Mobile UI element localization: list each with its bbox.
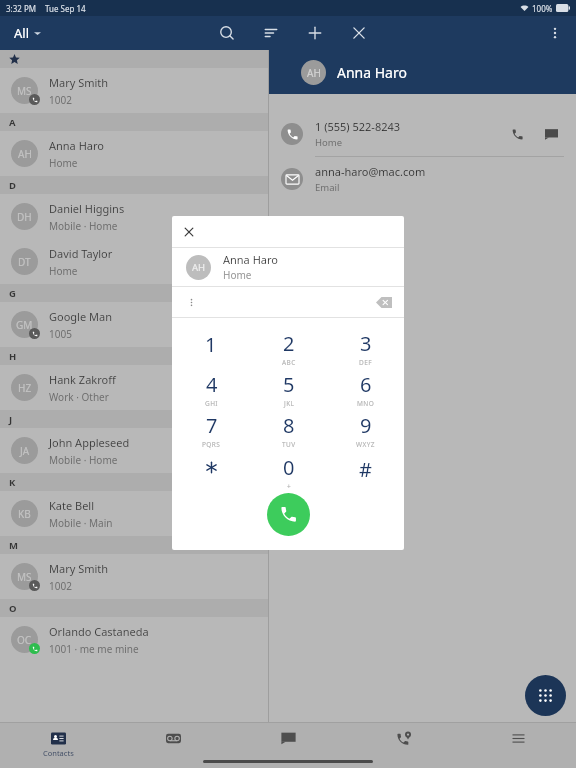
button[interactable]: DH	[0, 194, 268, 239]
staticText: 0	[283, 454, 295, 481]
button[interactable]: More options	[180, 291, 202, 313]
button[interactable]: HZ	[0, 365, 268, 410]
staticText: TUV	[282, 440, 296, 449]
button[interactable]: MS	[0, 68, 268, 113]
staticText: WXYZ	[356, 440, 375, 449]
staticText: JA	[20, 444, 30, 458]
button[interactable]: Backspace	[372, 290, 396, 314]
staticText: Mary Smith	[49, 75, 109, 90]
staticText: 3	[360, 330, 372, 357]
staticText: GM	[16, 318, 33, 332]
staticText: Google Man	[49, 309, 112, 324]
button[interactable]: 7	[172, 410, 250, 451]
staticText: Home	[223, 268, 252, 282]
staticText: 1005	[49, 327, 72, 341]
staticText: Home	[315, 136, 343, 149]
staticText: Home	[49, 156, 78, 170]
button[interactable]: Menu	[461, 722, 576, 768]
button[interactable]: MS	[0, 554, 268, 599]
staticText: O	[9, 602, 17, 615]
button[interactable]: More options	[542, 20, 568, 46]
button[interactable]: Add contact	[301, 19, 329, 47]
staticText: KB	[18, 507, 31, 521]
button[interactable]: 1	[172, 328, 250, 369]
button[interactable]: Search	[213, 19, 241, 47]
button[interactable]: Call	[502, 119, 532, 149]
button[interactable]: 0	[250, 451, 327, 493]
staticText: K	[9, 476, 16, 489]
staticText: 100%	[532, 3, 553, 14]
staticText: Contacts	[43, 748, 74, 758]
staticText: J	[9, 413, 13, 426]
button[interactable]: Close dialpad	[178, 221, 200, 243]
button[interactable]: 4	[172, 369, 250, 410]
staticText: MS	[17, 570, 32, 584]
staticText: 7	[206, 412, 218, 439]
staticText: Kate Bell	[49, 498, 95, 513]
staticText: 1002	[49, 579, 72, 593]
staticText: DT	[18, 255, 31, 269]
staticText: D	[9, 179, 16, 192]
staticText: 6	[360, 371, 372, 398]
staticText: Mobile · Main	[49, 516, 113, 530]
button[interactable]: Call	[267, 493, 310, 536]
button[interactable]: Sort	[257, 19, 285, 47]
button[interactable]: OC	[0, 617, 268, 662]
button[interactable]: Messages	[231, 722, 346, 768]
staticText: A	[9, 116, 16, 129]
button[interactable]: #	[327, 451, 404, 493]
staticText: MNO	[357, 399, 375, 408]
staticText: Daniel Higgins	[49, 201, 125, 216]
staticText: JKL	[284, 399, 295, 408]
staticText: All	[14, 24, 30, 42]
button[interactable]: Contacts	[0, 722, 116, 768]
staticText: Tue Sep 14	[45, 3, 86, 14]
button[interactable]: All	[10, 21, 45, 45]
button[interactable]: Recents	[346, 722, 461, 768]
staticText: 5	[283, 371, 295, 398]
button[interactable]: Voicemail	[116, 722, 231, 768]
button[interactable]: DT	[0, 239, 268, 284]
staticText: Mobile · Home	[49, 219, 118, 233]
button[interactable]: Open dialpad	[525, 675, 566, 716]
button[interactable]: KB	[0, 491, 268, 536]
staticText: anna-haro@mac.com	[315, 164, 426, 179]
staticText: MS	[17, 84, 32, 98]
staticText: OC	[17, 633, 32, 647]
staticText: +	[287, 482, 292, 491]
button[interactable]: AH	[172, 248, 404, 286]
button[interactable]: Message	[536, 119, 566, 149]
button[interactable]: 3	[327, 328, 404, 369]
staticText: Mobile · Home	[49, 453, 118, 467]
staticText: #	[359, 456, 372, 483]
button[interactable]: Close	[345, 19, 373, 47]
staticText: 1001 · me me mine	[49, 642, 139, 656]
button[interactable]: 6	[327, 369, 404, 410]
staticText: 1	[205, 331, 217, 358]
staticText: Anna Haro	[49, 138, 104, 153]
button[interactable]: anna-haro@mac.com	[269, 157, 576, 201]
staticText: AH	[18, 147, 32, 161]
staticText: Work · Other	[49, 390, 109, 404]
staticText: ABC	[282, 358, 296, 367]
staticText: PQRS	[202, 440, 221, 449]
staticText: M	[9, 539, 18, 552]
staticText: DEF	[359, 358, 372, 367]
staticText: H	[9, 350, 17, 363]
button[interactable]	[172, 451, 250, 493]
staticText: Mary Smith	[49, 561, 109, 576]
staticText: HZ	[18, 381, 32, 395]
staticText: 9	[360, 412, 372, 439]
button[interactable]: AH	[0, 131, 268, 176]
button[interactable]: JA	[0, 428, 268, 473]
button[interactable]: 9	[327, 410, 404, 451]
staticText: Home	[49, 264, 78, 278]
staticText: John Appleseed	[49, 435, 130, 450]
staticText: Anna Haro	[337, 63, 407, 82]
button[interactable]: 8	[250, 410, 327, 451]
button[interactable]: GM	[0, 302, 268, 347]
button[interactable]: 5	[250, 369, 327, 410]
button[interactable]: 2	[250, 328, 327, 369]
staticText: David Taylor	[49, 246, 113, 261]
button[interactable]: 1 (555) 522-8243	[269, 112, 576, 156]
